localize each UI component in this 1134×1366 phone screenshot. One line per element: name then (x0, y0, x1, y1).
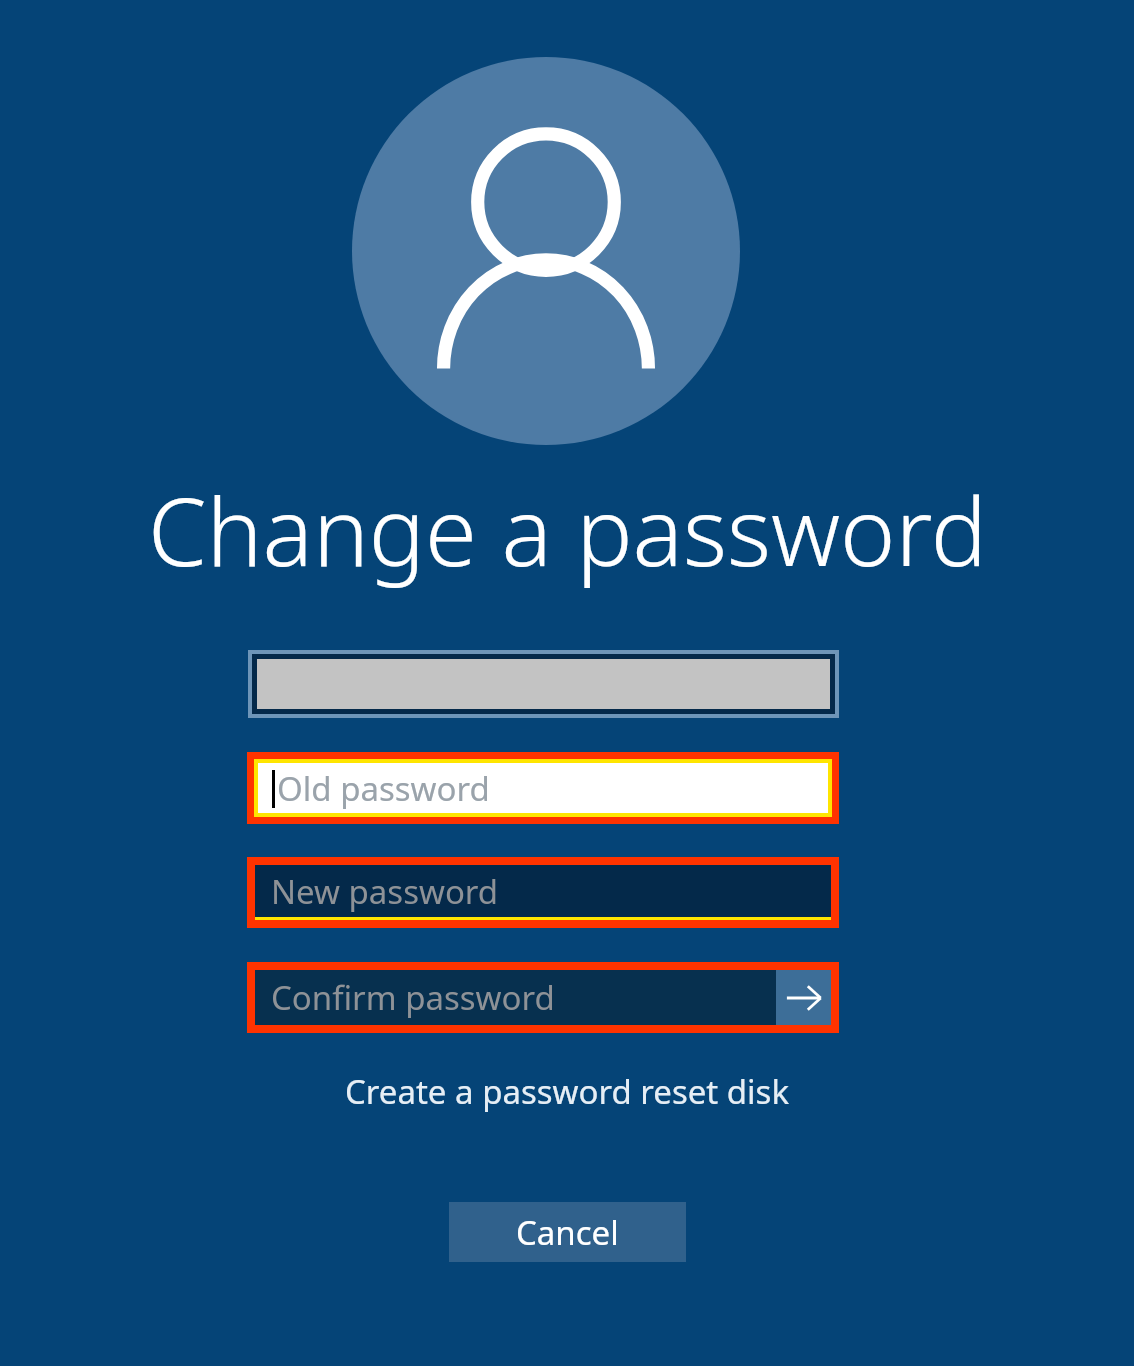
staticText: Confirm password (271, 975, 555, 1020)
staticText: Old password (277, 766, 490, 811)
button[interactable]: Cancel (449, 1202, 686, 1262)
button[interactable]: Create a password reset disk (345, 1069, 790, 1114)
staticText: New password (271, 869, 499, 914)
button[interactable]: Submit (776, 970, 831, 1025)
staticText: Cancel (516, 1210, 619, 1255)
staticText: Create a password reset disk (345, 1069, 790, 1114)
button[interactable]: New password (255, 865, 831, 920)
button[interactable]: Old password (258, 763, 828, 813)
staticText: Change a password (148, 466, 987, 594)
button[interactable]: Confirm password (255, 970, 776, 1025)
